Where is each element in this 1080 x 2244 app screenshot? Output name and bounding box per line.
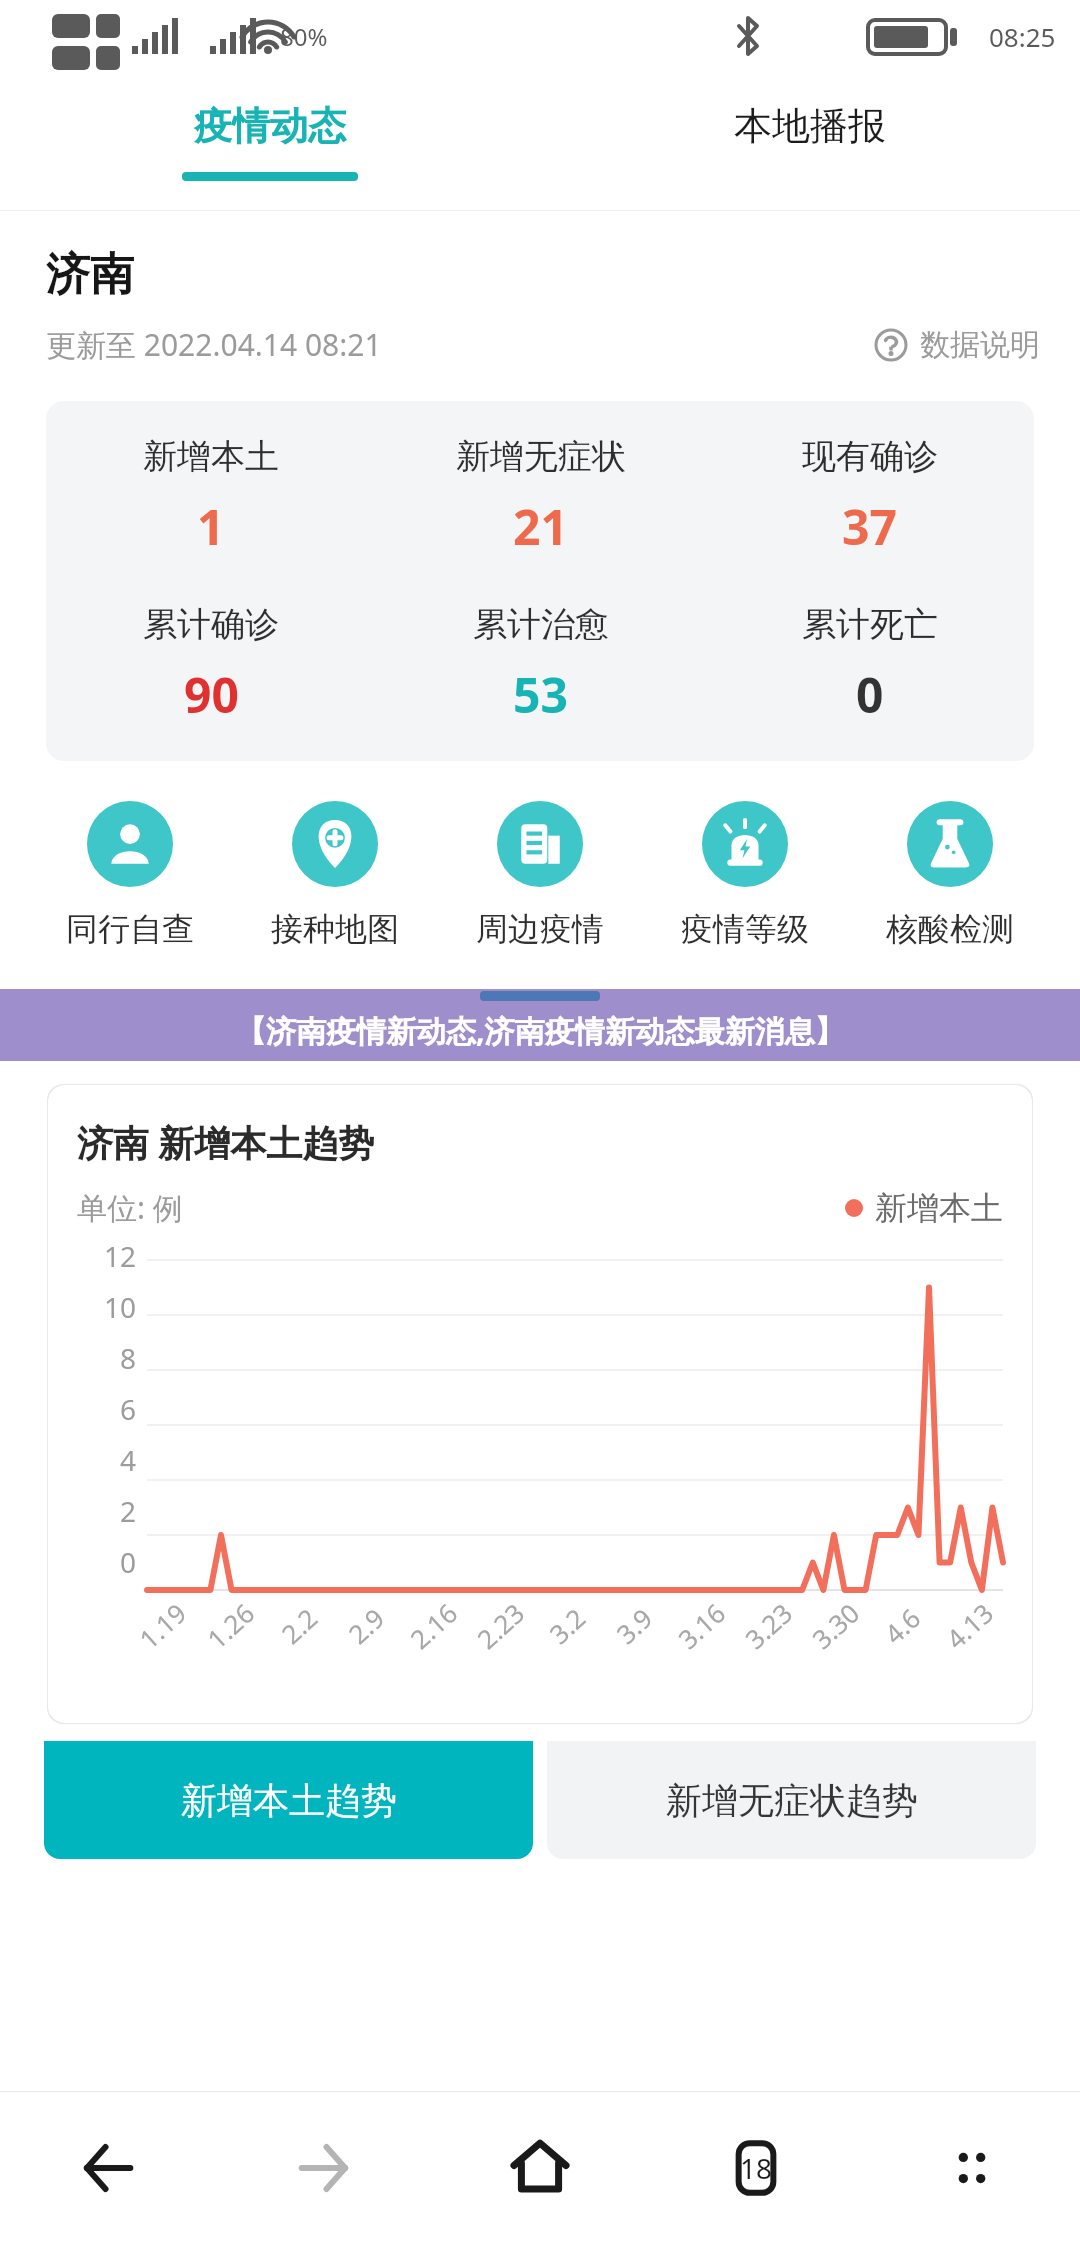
staticText: 4 [120, 1441, 137, 1479]
staticText: 0 [120, 1543, 137, 1581]
staticText: 1.19 [131, 1595, 193, 1656]
staticText: 新增本土 [875, 1188, 1003, 1228]
staticText: 3.16 [670, 1595, 732, 1656]
staticText: 2 [120, 1492, 137, 1530]
button[interactable]: Back [0, 2092, 216, 2244]
staticText: 4.13 [938, 1595, 1000, 1656]
staticText: 济南 [46, 247, 134, 302]
button[interactable]: 累计死亡 [705, 603, 1034, 727]
button[interactable]: 疫情等级 [642, 801, 847, 949]
staticText: 单位: 例 [77, 1187, 183, 1228]
button[interactable]: 累计确诊 [46, 603, 376, 727]
button[interactable]: 现有确诊 [705, 435, 1034, 559]
button[interactable]: 新增无症状 [376, 435, 705, 559]
button[interactable]: 接种地图 [232, 801, 437, 949]
staticText: 周边疫情 [476, 909, 604, 949]
staticText: 3.30 [804, 1595, 866, 1656]
staticText: 【济南疫情新动态,济南疫情新动态最新消息】 [236, 1010, 845, 1051]
staticText: 同行自查 [66, 909, 194, 949]
staticText: 2.9 [340, 1600, 391, 1651]
staticText: 累计治愈 [473, 603, 609, 646]
staticText: 0 [856, 662, 884, 727]
staticText: 1 [197, 494, 225, 559]
button[interactable]: 同行自查 [28, 801, 232, 949]
button[interactable]: 累计治愈 [376, 603, 705, 727]
staticText: 90 [184, 662, 239, 727]
staticText: 更新至 2022.04.14 08:21 [46, 324, 382, 365]
staticText: 08:25 [989, 19, 1056, 54]
button[interactable]: 新增本土 [46, 435, 376, 559]
staticText: 1.26 [199, 1595, 261, 1656]
staticText: 2.2 [273, 1600, 324, 1651]
staticText: 6 [120, 1390, 137, 1428]
staticText: 济南 新增本土趋势 [77, 1118, 375, 1167]
staticText: 本地播报 [734, 102, 886, 150]
staticText: 12 [104, 1237, 137, 1275]
button[interactable]: Forward [216, 2092, 432, 2244]
button[interactable]: Home [432, 2092, 648, 2244]
staticText: 累计确诊 [143, 603, 279, 646]
staticText: 新增本土趋势 [181, 1778, 397, 1823]
staticText: 8 [120, 1339, 137, 1377]
button[interactable]: 【济南疫情新动态,济南疫情新动态最新消息】 [0, 989, 1080, 1061]
staticText: 2.23 [469, 1595, 531, 1656]
button[interactable]: 数据说明 [874, 326, 1040, 364]
staticText: 新增无症状 [456, 435, 626, 478]
staticText: 18 [740, 2149, 773, 2187]
button[interactable]: 新增本土趋势 [44, 1741, 533, 1859]
button[interactable]: Tabs: 18 [648, 2092, 864, 2244]
staticText: 现有确诊 [802, 435, 938, 478]
button[interactable]: 核酸检测 [847, 801, 1052, 949]
button[interactable]: 本地播报 [540, 72, 1080, 210]
staticText: 核酸检测 [886, 909, 1014, 949]
staticText: 4.6 [876, 1600, 927, 1651]
staticText: 80% [280, 20, 328, 53]
staticText: 数据说明 [920, 326, 1040, 364]
staticText: 2.16 [402, 1595, 464, 1656]
staticText: 53 [513, 662, 568, 727]
button[interactable]: 周边疫情 [437, 801, 642, 949]
staticText: 21 [513, 494, 568, 559]
staticText: 接种地图 [271, 909, 399, 949]
staticText: 疫情动态 [194, 102, 346, 150]
staticText: 10 [104, 1288, 137, 1326]
button[interactable]: 疫情动态 [0, 72, 540, 210]
staticText: 累计死亡 [802, 603, 938, 646]
staticText: 疫情等级 [681, 909, 809, 949]
button[interactable]: 新增无症状趋势 [547, 1741, 1036, 1859]
staticText: 3.2 [541, 1600, 592, 1651]
staticText: 新增无症状趋势 [666, 1778, 918, 1823]
staticText: 37 [842, 494, 897, 559]
button[interactable]: More options [864, 2092, 1080, 2244]
staticText: 3.9 [608, 1600, 659, 1651]
staticText: 新增本土 [143, 435, 279, 478]
staticText: 3.23 [737, 1595, 799, 1656]
